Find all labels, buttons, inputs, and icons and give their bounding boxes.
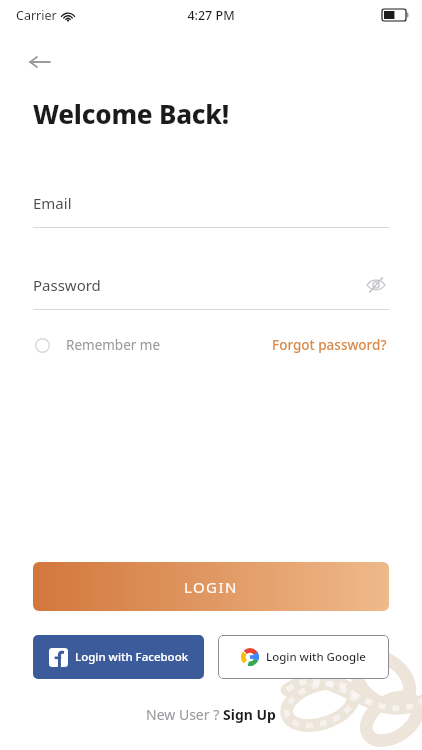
- staticText: Password: [33, 275, 101, 295]
- staticText: 4:27 PM: [187, 7, 235, 24]
- button[interactable]: Remember me: [33, 332, 163, 358]
- button[interactable]: Login with Google: [218, 635, 389, 679]
- button[interactable]: Forgot password?: [270, 332, 389, 358]
- staticText: Forgot password?: [272, 336, 387, 354]
- staticText: New User ?: [146, 705, 223, 724]
- staticText: Remember me: [66, 336, 161, 354]
- staticText: Welcome Back!: [33, 96, 229, 131]
- button[interactable]: Sign Up: [223, 705, 276, 724]
- staticText: Email: [33, 193, 72, 213]
- button[interactable]: Back: [20, 42, 60, 82]
- staticText: Login with Google: [266, 649, 366, 665]
- staticText: LOGIN: [184, 577, 238, 597]
- staticText: Carrier: [16, 7, 57, 24]
- staticText: Sign Up: [223, 705, 276, 724]
- button[interactable]: LOGIN: [33, 562, 389, 611]
- staticText: Login with Facebook: [75, 649, 189, 665]
- button[interactable]: Show password: [363, 272, 389, 298]
- button[interactable]: Login with Facebook: [33, 635, 204, 679]
